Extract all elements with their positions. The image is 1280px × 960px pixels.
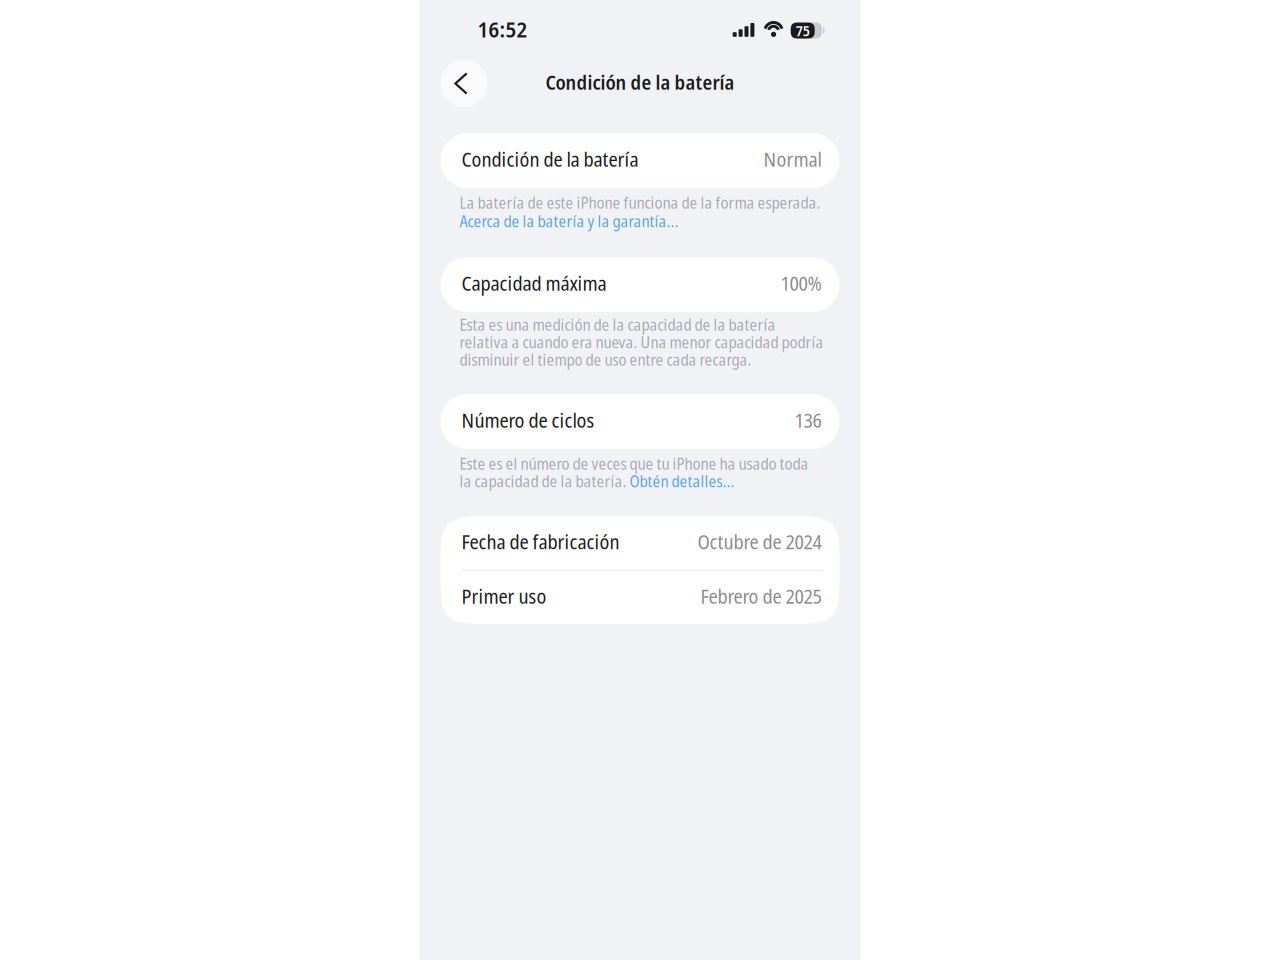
button[interactable]: Capacidad máxima xyxy=(440,257,839,312)
staticText: La batería de este iPhone funciona de la… xyxy=(459,191,820,214)
staticText: 75 xyxy=(796,20,810,40)
staticText: relativa a cuando era nueva. Una menor c… xyxy=(459,331,823,353)
button[interactable]: Obtén detalles... xyxy=(629,470,734,492)
staticText: disminuir el tiempo de uso entre cada re… xyxy=(459,348,751,371)
staticText: Primer uso xyxy=(461,582,546,610)
staticText: Condición de la batería xyxy=(461,145,638,173)
staticText: 100% xyxy=(780,269,821,297)
staticText: Condición de la batería xyxy=(545,68,734,96)
button[interactable]: Fecha de fabricación xyxy=(440,516,839,570)
staticText: Acerca de la batería y la garantía... xyxy=(459,210,678,232)
staticText: 136 xyxy=(794,406,821,434)
staticText: Número de ciclos xyxy=(461,406,594,434)
button[interactable]: Primer uso xyxy=(440,571,839,624)
staticText: Esta es una medición de la capacidad de … xyxy=(459,313,775,336)
staticText: la capacidad de la batería. xyxy=(459,470,629,492)
staticText: Fecha de fabricación xyxy=(461,528,619,555)
button[interactable]: Número de ciclos xyxy=(440,394,839,449)
staticText: Octubre de 2024 xyxy=(697,528,821,555)
staticText: Capacidad máxima xyxy=(461,269,606,297)
button[interactable]: Acerca de la batería y la garantía... xyxy=(459,213,858,228)
staticText: Este es el número de veces que tu iPhone… xyxy=(459,452,808,475)
staticText: 16:52 xyxy=(477,14,527,44)
staticText: Normal xyxy=(763,145,821,173)
staticText: Febrero de 2025 xyxy=(700,582,821,610)
button[interactable]: Condición de la batería xyxy=(440,133,839,188)
button[interactable]: Back xyxy=(440,60,487,107)
staticText: Obtén detalles... xyxy=(629,470,734,492)
